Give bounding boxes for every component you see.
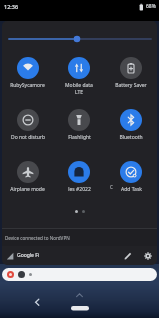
button[interactable]: RubySycamore	[2, 57, 53, 94]
staticText: C	[110, 184, 113, 190]
button[interactable]: Do not disturb	[2, 109, 53, 146]
button[interactable]	[2, 268, 157, 281]
button[interactable]: Airplane mode	[2, 161, 53, 198]
button[interactable]: Add Task	[105, 161, 157, 198]
staticText: Google Fi	[17, 252, 40, 259]
staticText: Do not disturb	[11, 134, 45, 141]
staticText: 68%	[146, 3, 156, 10]
staticText: Battery Saver	[115, 82, 147, 89]
staticText: Airplane mode	[10, 186, 45, 193]
staticText: Mobile data LTE	[65, 82, 93, 94]
button[interactable]	[2, 35, 157, 43]
staticText: Bluetooth	[119, 134, 143, 141]
button[interactable]: Battery Saver	[105, 57, 157, 94]
button[interactable]: Flashlight	[53, 109, 105, 146]
staticText: Device connected to NordVPN	[5, 235, 70, 241]
button[interactable]: Bluetooth	[105, 109, 157, 146]
button[interactable]: les #2022	[53, 161, 105, 198]
staticText: les #2022	[68, 186, 91, 193]
staticText: Flashlight	[68, 134, 91, 141]
button[interactable]	[124, 252, 132, 260]
staticText: Add Task	[121, 186, 142, 193]
staticText: RubySycamore	[10, 82, 45, 89]
button[interactable]: Device connected to NordVPN	[2, 229, 157, 246]
staticText: 12:36	[4, 3, 19, 10]
button[interactable]	[144, 252, 152, 260]
button[interactable]: Mobile data LTE	[53, 57, 105, 94]
